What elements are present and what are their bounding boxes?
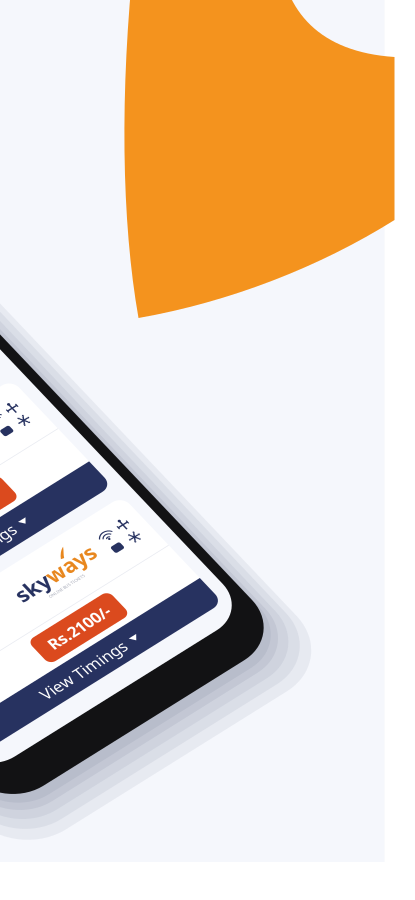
staticText: Bus Type: [1, 633, 51, 649]
staticText: Skyways: [1, 405, 85, 432]
button[interactable]: View Timings: [0, 545, 343, 587]
button[interactable]: Rs.2800/-: [128, 296, 247, 336]
staticText: Bus Type: [1, 432, 51, 448]
staticText: Rs.2100/-: [144, 705, 231, 731]
button[interactable]: View Timings: [0, 344, 343, 386]
staticText: View Timings: [93, 151, 216, 177]
button[interactable]: Rs.1570/-: [128, 497, 247, 537]
staticText: Skyways: [1, 606, 85, 633]
staticText: Rs.2800/-: [144, 303, 231, 329]
staticText: sky: [157, 626, 202, 661]
staticText: View Timings: [93, 553, 216, 579]
staticText: Rs.1570/-: [144, 504, 231, 530]
staticText: View Timings: [93, 754, 216, 780]
staticText: ONLINE BUS TICKETS: [187, 661, 239, 668]
staticText: Executive Class 45/49: [1, 448, 111, 487]
button[interactable]: View Timings: [0, 143, 343, 185]
staticText: Faisal Movers: [1, 3, 136, 30]
staticText: ways: [202, 626, 269, 661]
staticText: Faisal Movers: [1, 204, 136, 231]
staticText: Executive Class 45/49: [1, 649, 111, 688]
button[interactable]: Rs.2100/-: [128, 698, 247, 738]
button[interactable]: View Timings: [0, 746, 343, 788]
